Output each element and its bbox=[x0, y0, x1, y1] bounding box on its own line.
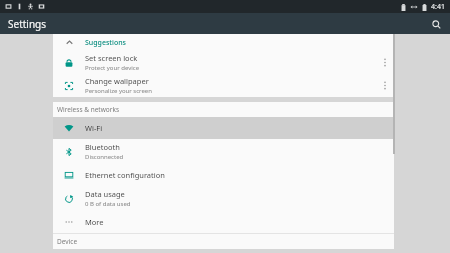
button[interactable]: Data usage bbox=[53, 186, 394, 211]
button[interactable]: More options bbox=[376, 74, 394, 97]
staticText: 4:41 bbox=[431, 2, 445, 12]
button[interactable]: Wi-Fi bbox=[53, 117, 394, 139]
staticText: More bbox=[85, 217, 104, 227]
staticText: Change wallpaper bbox=[85, 76, 149, 86]
staticText: Set screen lock bbox=[85, 53, 138, 63]
staticText: Device bbox=[57, 237, 78, 246]
button[interactable]: Search bbox=[428, 16, 444, 32]
button[interactable]: Suggestions bbox=[53, 34, 394, 51]
staticText: Wireless & networks bbox=[57, 105, 119, 114]
staticText: Settings bbox=[8, 17, 47, 31]
button[interactable]: More options bbox=[376, 51, 394, 74]
staticText: 0 B of data used bbox=[85, 200, 131, 208]
button[interactable]: Ethernet configuration bbox=[53, 164, 394, 186]
staticText: Disconnected bbox=[85, 153, 124, 161]
button[interactable]: Change wallpaper bbox=[53, 74, 394, 97]
staticText: Data usage bbox=[85, 189, 125, 199]
staticText: Personalize your screen bbox=[85, 87, 152, 95]
button[interactable]: More bbox=[53, 211, 394, 233]
staticText: Protect your device bbox=[85, 64, 140, 72]
staticText: Wi-Fi bbox=[85, 123, 103, 133]
button[interactable]: Bluetooth bbox=[53, 139, 394, 164]
staticText: Suggestions bbox=[85, 38, 126, 48]
button[interactable]: Set screen lock bbox=[53, 51, 394, 74]
staticText: Ethernet configuration bbox=[85, 170, 165, 180]
staticText: Bluetooth bbox=[85, 142, 120, 152]
